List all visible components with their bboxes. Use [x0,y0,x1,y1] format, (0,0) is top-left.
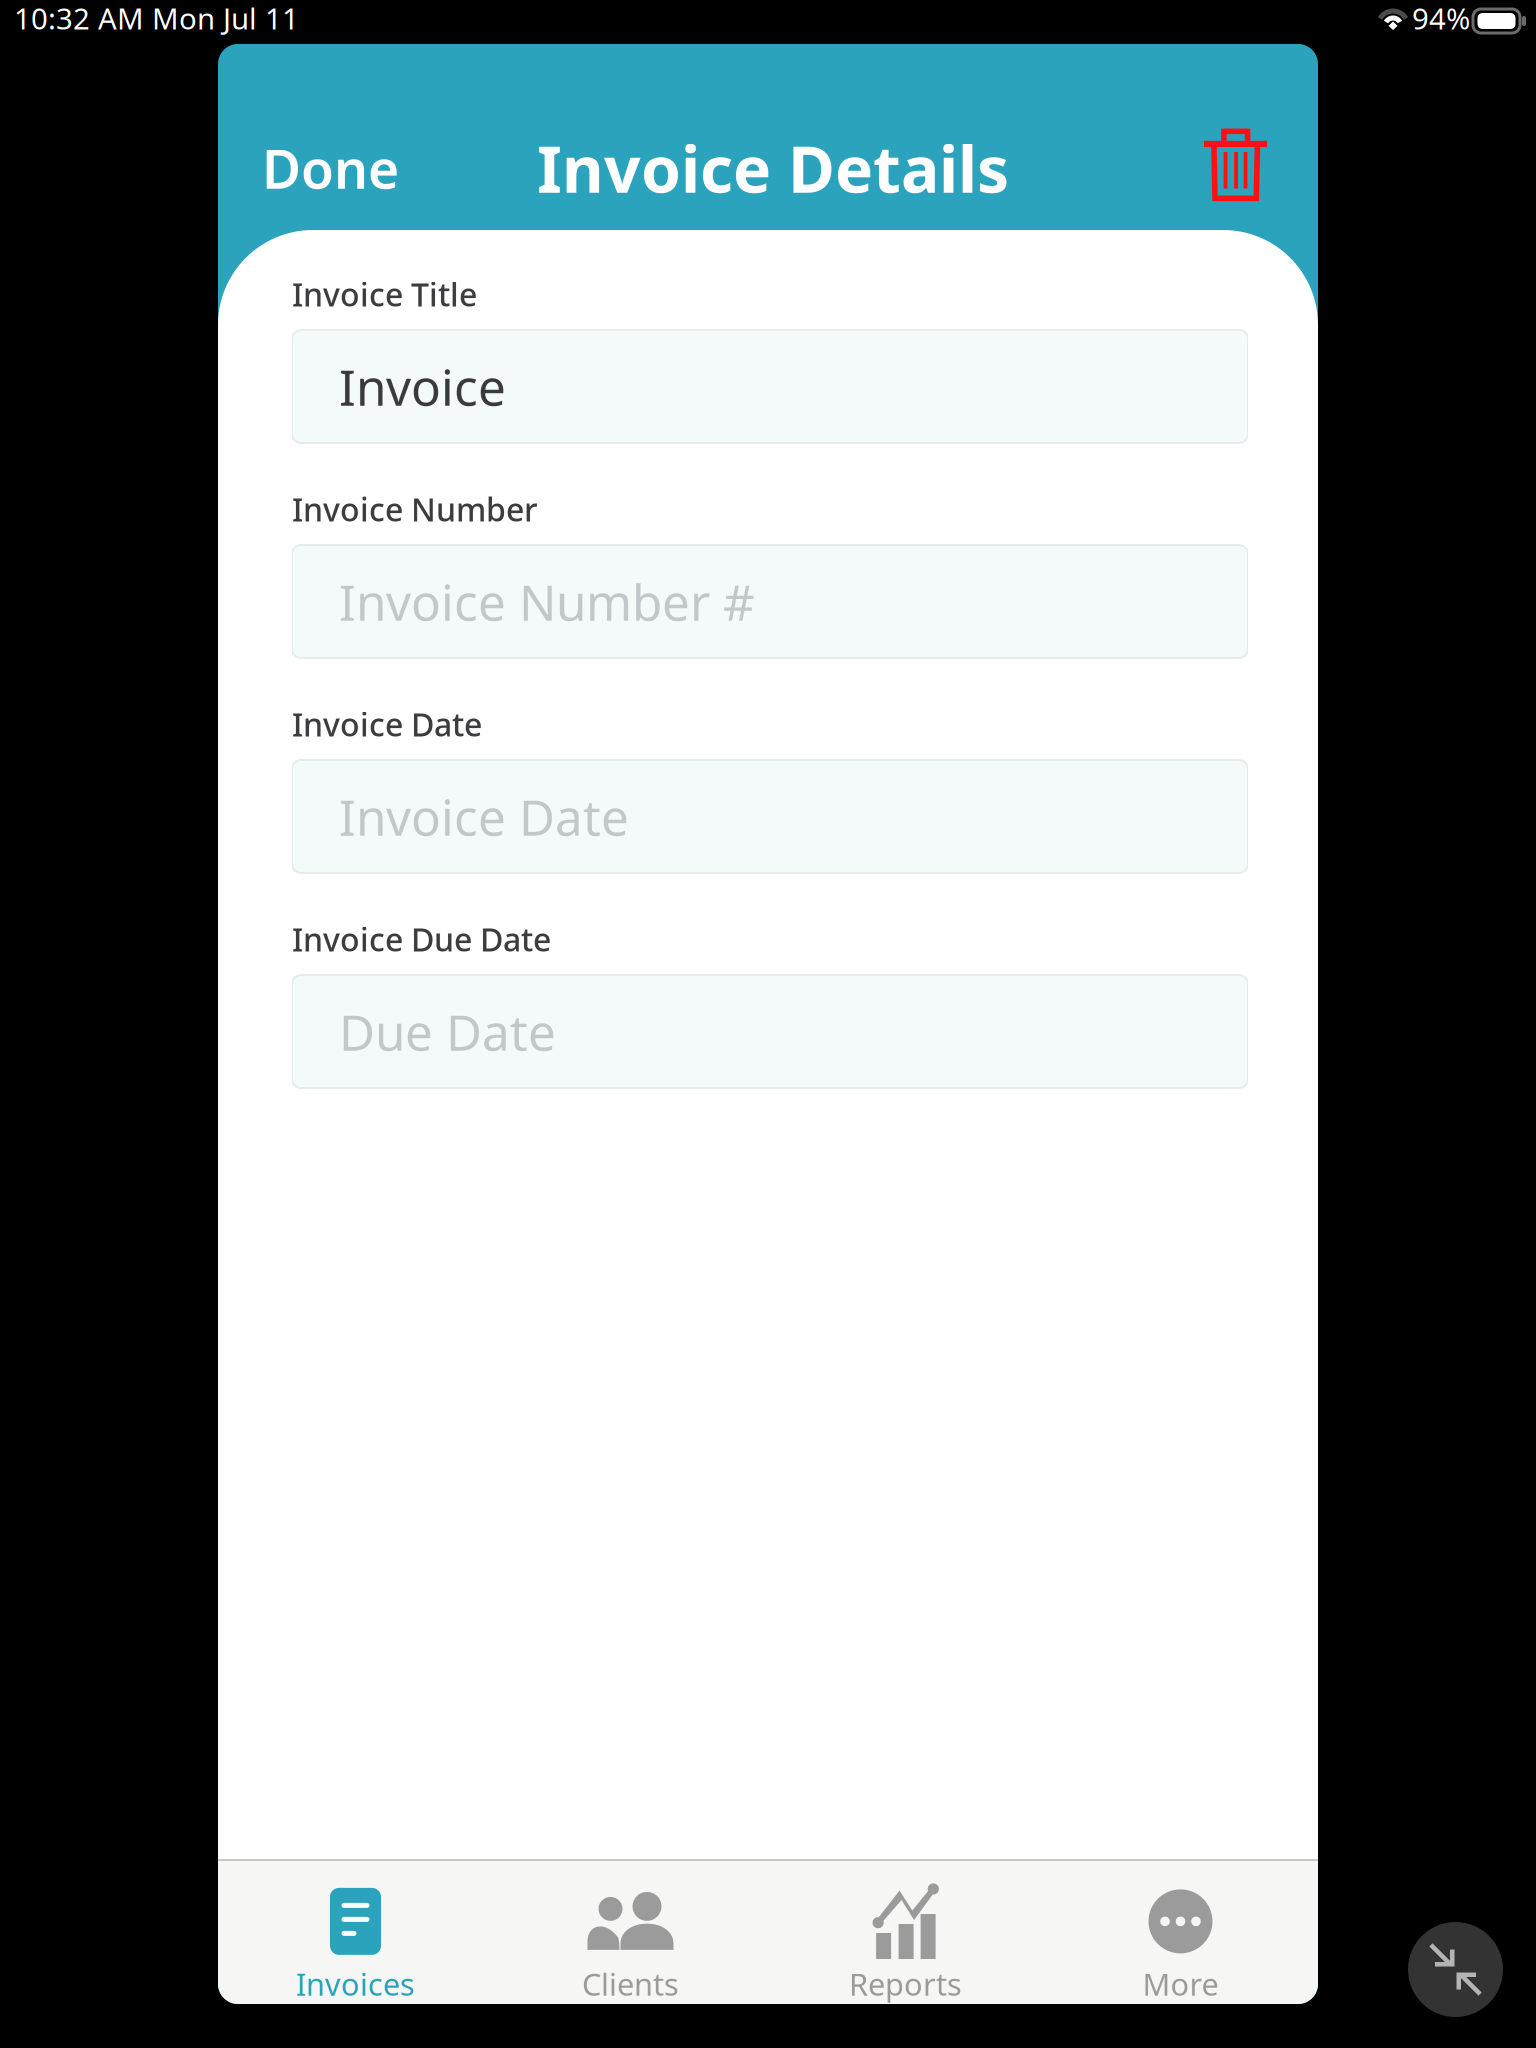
button[interactable]: Delete invoice [1173,110,1298,220]
staticText: 10:32 AM [14,0,144,37]
button[interactable]: Invoices [218,1860,493,2006]
staticText: More [1142,1963,1218,2004]
staticText: Due Date [339,999,556,1064]
staticText: Invoice Date [292,703,482,745]
staticText: Invoice Date [339,784,629,849]
button[interactable]: Done [262,124,432,212]
button[interactable]: Clients [493,1860,768,2006]
staticText: Invoice Details [537,125,1009,210]
staticText: Reports [849,1963,962,2004]
staticText: Invoices [296,1963,415,2004]
button[interactable]: Reports [768,1860,1043,2006]
staticText: Invoice Number # [339,569,755,634]
staticText: Invoice Number [292,488,538,530]
button[interactable]: Scale down [1408,1922,1503,2017]
staticText: Invoice Due Date [292,918,551,960]
staticText: Clients [582,1963,679,2004]
staticText: Mon Jul 11 [152,0,299,37]
staticText: Invoice [339,354,506,419]
staticText: 94% [1412,0,1470,37]
button[interactable]: More [1043,1860,1318,2006]
staticText: Done [262,133,399,203]
staticText: Invoice Title [292,273,477,315]
